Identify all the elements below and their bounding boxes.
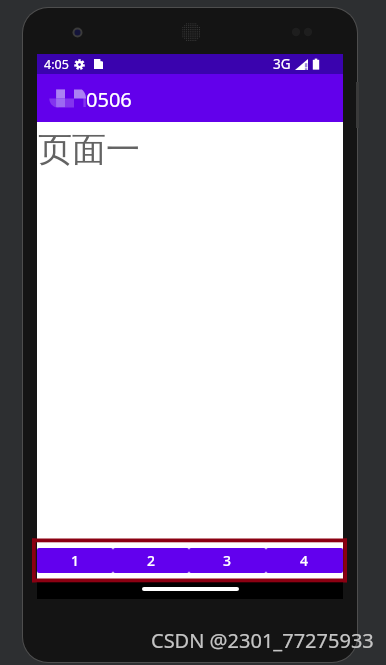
button[interactable]: 3 [189,548,266,573]
button[interactable]: 2 [113,548,189,573]
staticText: 2 [147,551,156,570]
staticText: CSDN @2301_77275933 [151,627,374,654]
staticText: 页面一 [38,128,140,171]
staticText: 1 [71,551,80,570]
staticText: 3 [223,551,232,570]
staticText: 0506 [86,86,132,113]
staticText: 3G [273,55,291,73]
button[interactable]: 4 [266,548,343,573]
staticText: 4 [300,551,309,570]
button[interactable]: 1 [37,548,113,573]
staticText: 4:05 [44,56,69,73]
